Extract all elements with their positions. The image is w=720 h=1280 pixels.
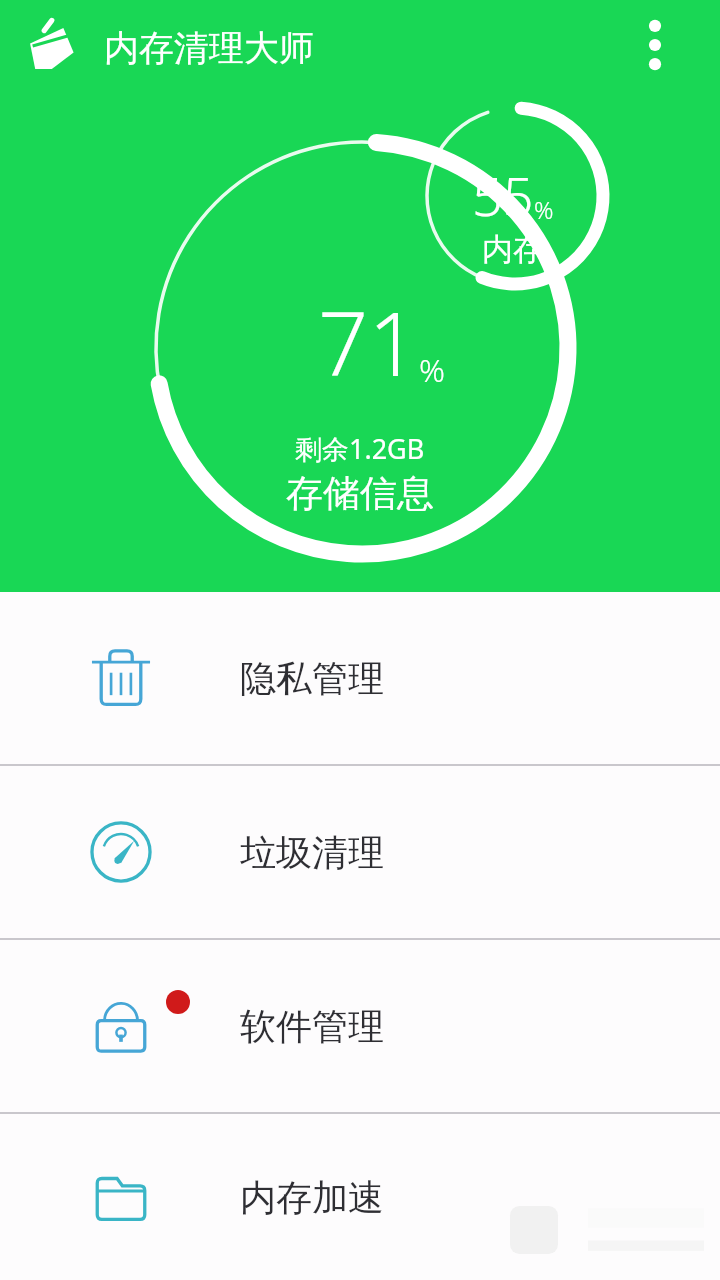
staticText: 71 (318, 282, 419, 402)
staticText: 隐私管理 (240, 656, 384, 701)
staticText: 垃圾清理 (240, 830, 384, 875)
staticText: 存储信息 (286, 470, 434, 517)
button[interactable]: 隐私管理 (0, 592, 720, 764)
staticText: % (419, 348, 445, 392)
button[interactable]: More options (626, 16, 684, 74)
button[interactable]: Clean (16, 14, 80, 78)
button[interactable]: 内存加速 (0, 1114, 720, 1280)
staticText: 剩余1.2GB (295, 430, 425, 467)
button[interactable]: 软件管理 (0, 940, 720, 1112)
button[interactable]: 垃圾清理 (0, 766, 720, 938)
staticText: 内存加速 (240, 1175, 384, 1220)
staticText: 内存 (482, 230, 544, 269)
staticText: % (534, 193, 554, 226)
staticText: 软件管理 (240, 1004, 384, 1049)
staticText: 内存清理大师 (104, 26, 314, 70)
staticText: 55 (472, 158, 534, 232)
